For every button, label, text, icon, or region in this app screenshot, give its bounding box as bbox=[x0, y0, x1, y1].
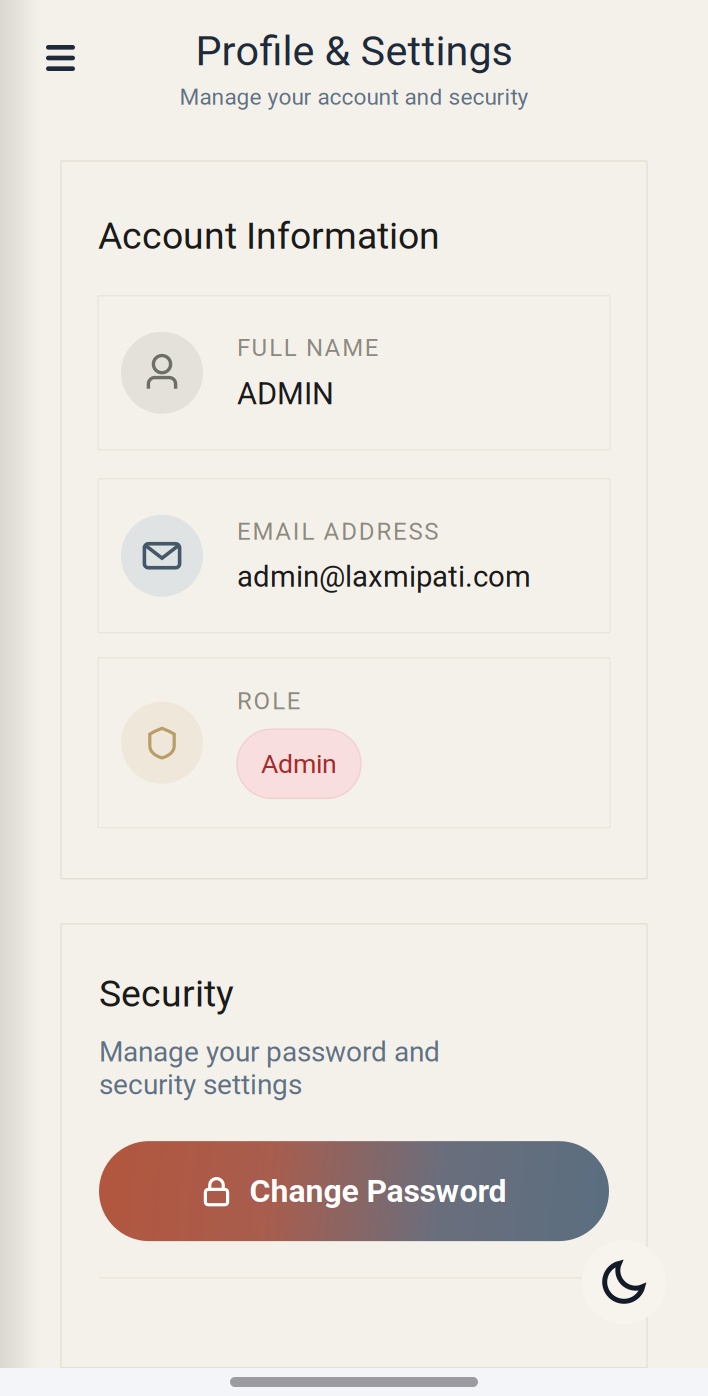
staticText: Change Password bbox=[249, 1172, 506, 1210]
staticText: admin@laxmipati.com bbox=[237, 560, 531, 594]
button[interactable]: Menu bbox=[30, 29, 91, 87]
staticText: FULL NAME bbox=[237, 334, 379, 362]
button[interactable]: Toggle dark mode bbox=[582, 1240, 666, 1324]
staticText: Account Information bbox=[98, 214, 440, 258]
staticText: Security bbox=[99, 972, 234, 1015]
staticText: Manage your account and security bbox=[179, 84, 528, 110]
button[interactable]: Change Password bbox=[99, 1141, 609, 1241]
staticText: Manage your password and security settin… bbox=[99, 1035, 440, 1101]
staticText: Profile & Settings bbox=[195, 27, 512, 75]
staticText: ROLE bbox=[237, 687, 301, 715]
staticText: Admin bbox=[261, 748, 337, 779]
staticText: ADMIN bbox=[237, 376, 334, 412]
staticText: EMAIL ADDRESS bbox=[237, 517, 438, 546]
